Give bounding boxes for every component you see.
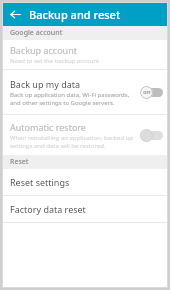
staticText: Factory data reset xyxy=(10,203,86,215)
button[interactable]: Factory data reset xyxy=(2,196,168,222)
staticText: OFF xyxy=(143,90,151,95)
button[interactable]: Back up my data xyxy=(2,70,168,114)
staticText: Back up application data, Wi-Fi password… xyxy=(10,91,130,107)
staticText: When reinstalling an application, backed… xyxy=(10,134,134,150)
staticText: Google account xyxy=(10,28,63,38)
staticText: Need to set the backup account xyxy=(10,57,100,65)
staticText: Backup account xyxy=(10,44,77,56)
staticText: Reset xyxy=(10,157,29,167)
button[interactable]: Backup account xyxy=(2,40,168,69)
other: Automatic restore disabled xyxy=(140,129,163,142)
staticText: Back up my data xyxy=(10,78,81,90)
button[interactable]: Automatic restore xyxy=(2,115,168,155)
staticText: Automatic restore xyxy=(10,121,86,133)
button[interactable]: Reset settings xyxy=(2,169,168,195)
other: Back up my data off xyxy=(140,86,163,99)
button[interactable]: Back xyxy=(7,6,23,22)
staticText: Backup and reset xyxy=(29,7,121,22)
staticText: Reset settings xyxy=(10,176,70,188)
